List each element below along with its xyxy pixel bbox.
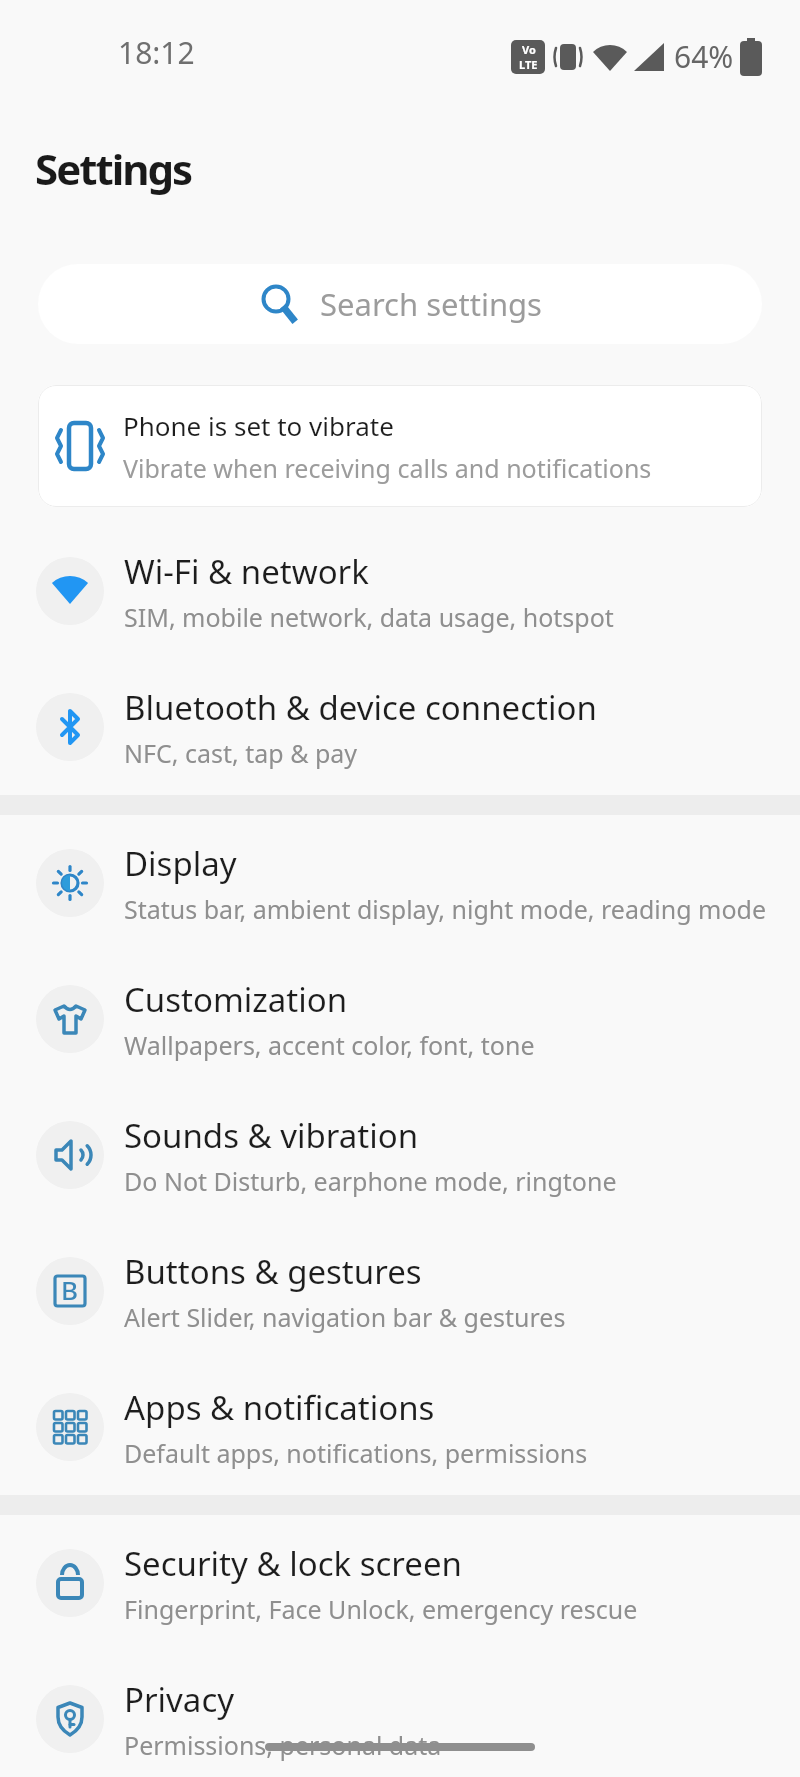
button[interactable]: Wi-Fi & network (0, 523, 800, 659)
staticText: Security & lock screen (124, 1541, 462, 1586)
staticText: Default apps, notifications, permissions (124, 1436, 588, 1470)
staticText: Buttons & gestures (124, 1249, 422, 1294)
button[interactable]: Privacy (0, 1651, 800, 1777)
staticText: LTE (519, 57, 538, 72)
staticText: NFC, cast, tap & pay (124, 736, 358, 770)
staticText: Phone is set to vibrate (123, 408, 394, 443)
staticText: Display (124, 841, 237, 886)
button[interactable]: Sounds & vibration (0, 1087, 800, 1223)
staticText: Wi-Fi & network (124, 549, 369, 594)
staticText: B (61, 1272, 79, 1307)
button[interactable]: Buttons & gestures (0, 1223, 800, 1359)
staticText: 64% (674, 36, 734, 77)
staticText: Vo (522, 42, 536, 57)
button[interactable]: Phone is set to vibrate (38, 385, 762, 507)
staticText: Customization (124, 977, 348, 1022)
staticText: Do Not Disturb, earphone mode, ringtone (124, 1164, 617, 1198)
staticText: Permissions, personal data (124, 1728, 442, 1762)
staticText: SIM, mobile network, data usage, hotspot (124, 600, 614, 634)
button[interactable]: Customization (0, 951, 800, 1087)
button[interactable]: Display (0, 815, 800, 951)
staticText: Fingerprint, Face Unlock, emergency resc… (124, 1592, 638, 1626)
staticText: Sounds & vibration (124, 1113, 419, 1158)
button[interactable]: Apps & notifications (0, 1359, 800, 1495)
staticText: Privacy (124, 1677, 235, 1722)
staticText: Apps & notifications (124, 1385, 435, 1430)
staticText: Search settings (320, 283, 542, 325)
staticText: 18:12 (118, 32, 195, 73)
staticText: Settings (35, 140, 192, 197)
button[interactable]: Search settings (38, 264, 762, 344)
staticText: Status bar, ambient display, night mode,… (124, 892, 767, 926)
button[interactable]: Security & lock screen (0, 1515, 800, 1651)
staticText: Wallpapers, accent color, font, tone (124, 1028, 535, 1062)
button[interactable]: Bluetooth & device connection (0, 659, 800, 795)
staticText: Vibrate when receiving calls and notific… (123, 451, 652, 485)
staticText: Alert Slider, navigation bar & gestures (124, 1300, 566, 1334)
staticText: Bluetooth & device connection (124, 685, 597, 730)
